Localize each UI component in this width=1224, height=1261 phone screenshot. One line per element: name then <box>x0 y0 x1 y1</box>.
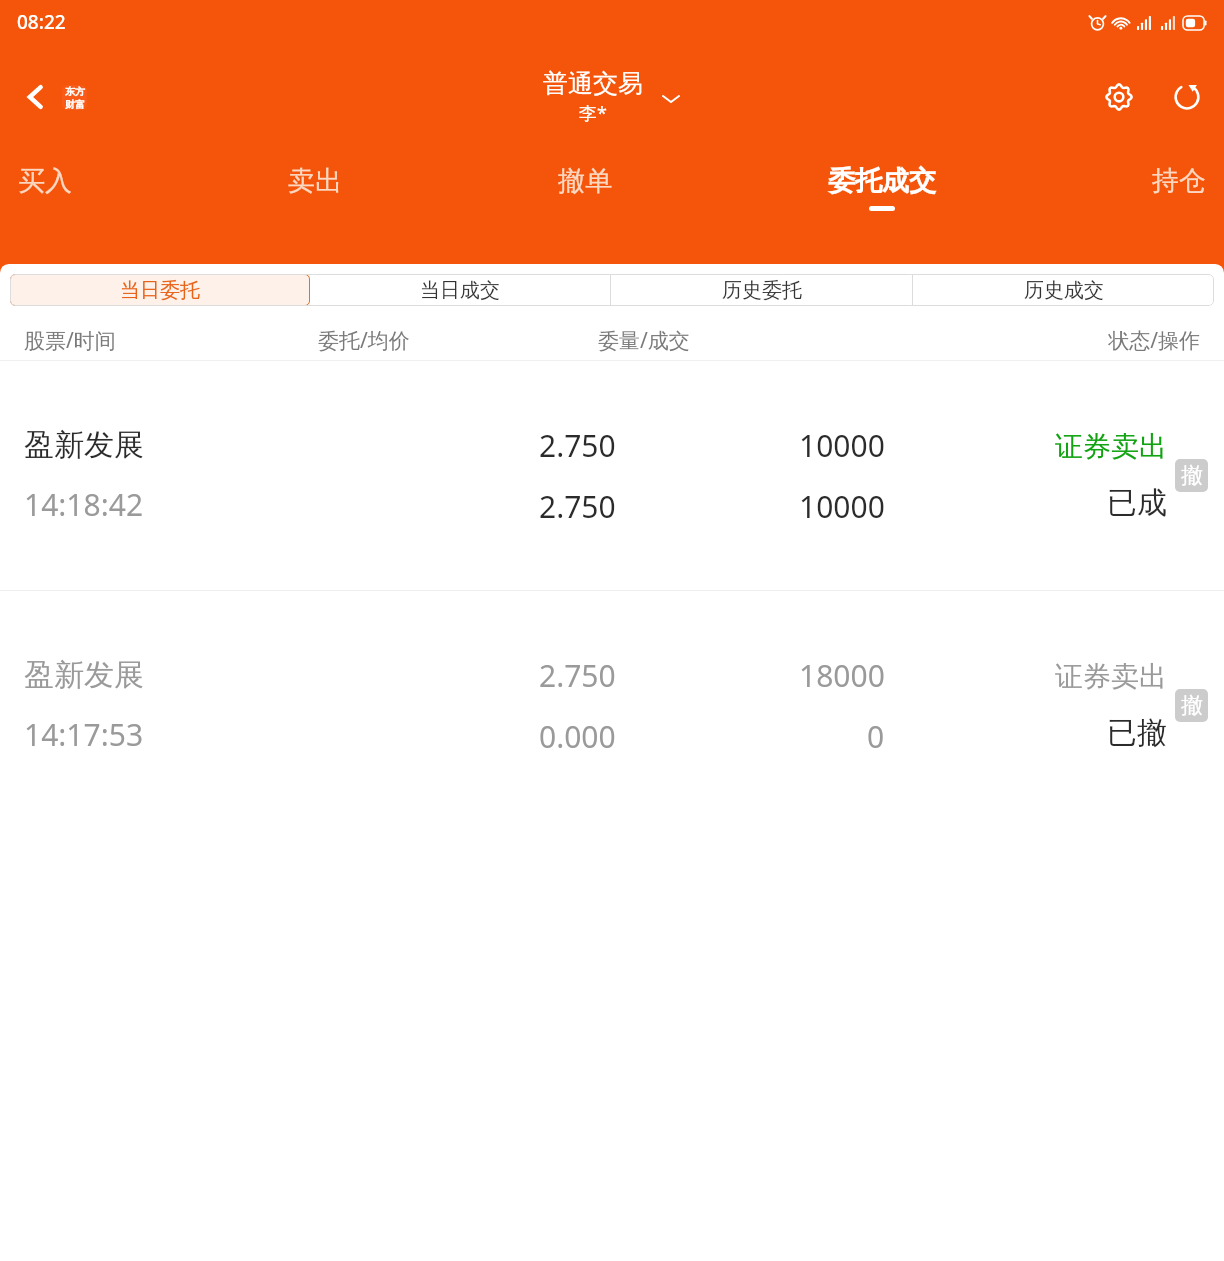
staticText: 已撤 <box>1107 714 1167 752</box>
button[interactable]: 委托成交 <box>828 149 936 211</box>
button[interactable]: 普通交易 <box>543 68 681 126</box>
staticText: 委量/成交 <box>598 326 892 355</box>
staticText: 撤 <box>1181 692 1203 720</box>
staticText: 2.750 <box>539 425 616 466</box>
staticText: 盈新发展 <box>24 426 144 464</box>
button[interactable]: 买入 <box>18 149 72 206</box>
staticText: 委托成交 <box>828 164 936 198</box>
button[interactable]: 撤单 <box>558 149 612 206</box>
button[interactable]: 持仓 <box>1152 149 1206 206</box>
staticText: 持仓 <box>1152 164 1206 198</box>
staticText: 撤单 <box>558 164 612 198</box>
staticText: 东方 <box>65 85 85 98</box>
staticText: 普通交易 <box>543 68 643 99</box>
staticText: 14:18:42 <box>24 484 144 525</box>
staticText: 0.000 <box>539 716 616 757</box>
staticText: 李* <box>579 101 607 126</box>
staticText: 委托/均价 <box>318 326 598 355</box>
staticText: 10000 <box>799 425 885 466</box>
staticText: 2.750 <box>539 655 616 696</box>
staticText: 财富 <box>65 98 85 110</box>
button[interactable]: 盈新发展 <box>0 591 1224 820</box>
button[interactable]: 历史成交 <box>913 274 1214 306</box>
staticText: 10000 <box>799 486 885 527</box>
staticText: 证券卖出 <box>1055 659 1167 694</box>
staticText: 卖出 <box>288 164 342 198</box>
staticText: 已成 <box>1107 484 1167 522</box>
staticText: 股票/时间 <box>24 326 318 355</box>
button[interactable]: 撤 <box>1175 459 1208 492</box>
staticText: 当日委托 <box>120 278 200 303</box>
button[interactable]: Settings <box>1092 70 1146 124</box>
button[interactable]: Refresh <box>1160 70 1214 124</box>
staticText: 14:17:53 <box>24 714 144 755</box>
staticText: 撤 <box>1181 462 1203 490</box>
staticText: 08:22 <box>17 9 66 35</box>
staticText: 18000 <box>799 655 885 696</box>
button[interactable]: 卖出 <box>288 149 342 206</box>
button[interactable]: 历史委托 <box>611 274 912 306</box>
button[interactable]: 盈新发展 <box>0 361 1224 590</box>
staticText: 盈新发展 <box>24 656 144 694</box>
button[interactable]: 当日委托 <box>10 274 310 306</box>
button[interactable]: Back <box>10 71 62 123</box>
staticText: 0 <box>867 716 885 757</box>
button[interactable]: 当日成交 <box>310 274 610 306</box>
staticText: 历史委托 <box>722 278 802 303</box>
staticText: 2.750 <box>539 486 616 527</box>
button[interactable]: 东方财富 <box>62 85 87 110</box>
staticText: 历史成交 <box>1024 278 1104 303</box>
staticText: 当日成交 <box>420 278 500 303</box>
staticText: 买入 <box>18 164 72 198</box>
staticText: 状态/操作 <box>892 326 1200 355</box>
staticText: 证券卖出 <box>1055 429 1167 464</box>
button[interactable]: 撤 <box>1175 689 1208 722</box>
